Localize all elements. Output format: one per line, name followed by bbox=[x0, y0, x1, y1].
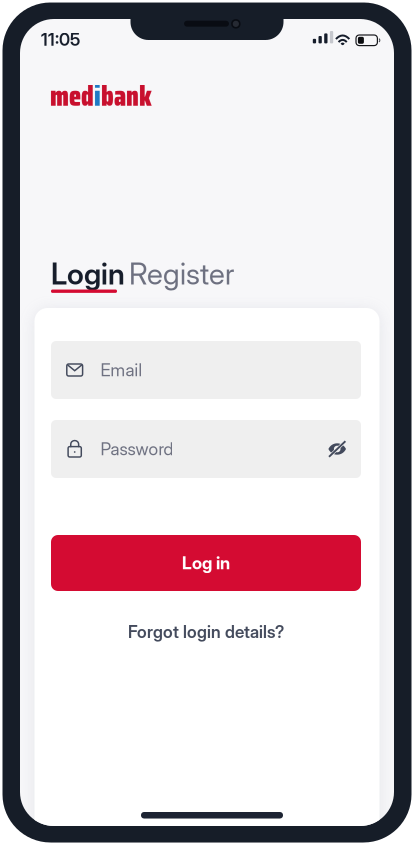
staticText: 11:05 bbox=[41, 29, 80, 50]
button[interactable]: Login bbox=[51, 256, 123, 294]
staticText: Password bbox=[100, 438, 173, 459]
button[interactable]: Forgot login details? bbox=[51, 617, 361, 647]
button[interactable]: Register bbox=[129, 256, 255, 290]
staticText: Register bbox=[129, 256, 234, 291]
staticText: Login bbox=[51, 256, 125, 291]
button[interactable]: Log in bbox=[51, 535, 361, 591]
staticText: med bbox=[50, 74, 94, 118]
staticText: Log in bbox=[182, 552, 230, 573]
staticText: Forgot login details? bbox=[128, 622, 284, 642]
button[interactable]: Show password bbox=[328, 441, 347, 457]
staticText: Email bbox=[100, 359, 142, 380]
staticText: bank bbox=[101, 74, 152, 118]
staticText: i bbox=[94, 74, 101, 118]
